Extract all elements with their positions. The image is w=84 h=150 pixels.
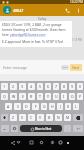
- button[interactable]: Contact avatar: [3, 6, 11, 14]
- staticText: 1:15 PM: [72, 38, 82, 42]
- button[interactable]: N: [55, 114, 62, 121]
- button[interactable]: More options: [73, 5, 84, 16]
- button[interactable]: Shift: [1, 114, 8, 121]
- staticText: 160/1: [62, 66, 68, 69]
- staticText: Send: [72, 66, 80, 70]
- staticText: J: [60, 104, 61, 109]
- button[interactable]: Move to Next: [20, 125, 62, 132]
- button[interactable]: Call: [62, 5, 73, 16]
- button[interactable]: 6: [45, 83, 51, 90]
- button[interactable]: Home: [38, 139, 45, 146]
- button[interactable]: V: [37, 114, 44, 121]
- button[interactable]: D: [23, 103, 30, 110]
- staticText: L: [75, 104, 77, 109]
- button[interactable]: G: [41, 103, 47, 110]
- button[interactable]: W: [10, 93, 17, 100]
- staticText: 5: [39, 84, 42, 89]
- staticText: 4: [30, 84, 33, 89]
- staticText: U: [55, 94, 58, 99]
- button[interactable]: X: [19, 114, 26, 121]
- button[interactable]: Keyboard: [28, 139, 35, 146]
- staticText: 2: [12, 84, 15, 89]
- button[interactable]: EDGE 3/Court 1395, 2 B&R, 2 car garage: [0, 21, 72, 47]
- button[interactable]: 160/1: [61, 65, 69, 70]
- button[interactable]: K: [65, 103, 71, 110]
- staticText: V: [39, 115, 42, 120]
- button[interactable]: Symbols: [1, 125, 9, 132]
- button[interactable]: Z: [10, 114, 17, 121]
- staticText: ↵: [77, 127, 80, 131]
- staticText: .: [67, 126, 68, 131]
- staticText: !#1: [3, 127, 7, 130]
- staticText: E-Z approval. Move in fast. To STOP UTed: [2, 40, 63, 44]
- button[interactable]: B: [46, 114, 53, 121]
- staticText: 9: [71, 84, 74, 89]
- button[interactable]: Recent apps: [64, 139, 71, 146]
- staticText: H: [51, 104, 54, 109]
- staticText: Today: [0, 17, 84, 21]
- button[interactable]: P: [77, 93, 83, 100]
- button[interactable]: M: [64, 114, 71, 121]
- staticText: P: [79, 94, 82, 99]
- staticText: R: [30, 94, 33, 99]
- staticText: C: [30, 115, 33, 120]
- button[interactable]: A: [5, 103, 12, 110]
- staticText: yaleedgeNChomes.com: [10, 33, 46, 37]
- button[interactable]: O: [69, 93, 75, 100]
- button[interactable]: T: [37, 93, 43, 100]
- button[interactable]: 8: [61, 83, 67, 90]
- button[interactable]: Q: [1, 93, 8, 100]
- button[interactable]: E: [19, 93, 26, 100]
- staticText: F: [35, 104, 37, 109]
- button[interactable]: R: [28, 93, 35, 100]
- staticText: B: [48, 115, 51, 120]
- staticText: G: [43, 104, 46, 109]
- button[interactable]: 7: [53, 83, 59, 90]
- staticText: Z: [12, 115, 15, 120]
- button[interactable]: Enter: [73, 125, 83, 132]
- staticText: EDGE 3/Court 1395, 2 B&R, 2 car garage: [2, 23, 62, 27]
- button[interactable]: Hide keyboard: [15, 139, 22, 146]
- button[interactable]: S: [14, 103, 21, 110]
- button[interactable]: U: [53, 93, 59, 100]
- staticText: O: [71, 94, 74, 99]
- staticText: 48847: [13, 8, 24, 13]
- staticText: Enter message: [3, 65, 27, 70]
- button[interactable]: Delete: [73, 114, 83, 121]
- staticText: homes Starting at $200/month. View them: [2, 28, 66, 32]
- button[interactable]: L: [73, 103, 79, 110]
- staticText: M: [66, 115, 70, 120]
- button[interactable]: J: [57, 103, 63, 110]
- staticText: W: [12, 94, 16, 99]
- button[interactable]: Y: [45, 93, 51, 100]
- button[interactable]: 4: [28, 83, 35, 90]
- button[interactable]: Voice input: [49, 139, 56, 146]
- button[interactable]: Send: [70, 64, 82, 71]
- staticText: E: [22, 94, 24, 99]
- button[interactable]: 9: [69, 83, 75, 90]
- staticText: Q: [3, 94, 6, 99]
- staticText: 12:22 PM: [70, 0, 83, 4]
- button[interactable]: H: [49, 103, 55, 110]
- staticText: K: [67, 104, 70, 109]
- button[interactable]: Back: [57, 139, 64, 146]
- staticText: 0: [79, 84, 82, 89]
- staticText: 7: [55, 84, 58, 89]
- staticText: 6: [47, 84, 50, 89]
- staticText: 1: [3, 84, 6, 89]
- staticText: here: [2, 33, 10, 37]
- button[interactable]: 0: [77, 83, 83, 90]
- button[interactable]: F: [32, 103, 39, 110]
- staticText: 8: [63, 84, 66, 89]
- staticText: X: [21, 115, 24, 120]
- staticText: A: [7, 104, 10, 109]
- button[interactable]: C: [28, 114, 35, 121]
- button[interactable]: Settings: [11, 125, 18, 132]
- button[interactable]: 2: [10, 83, 17, 90]
- button[interactable]: 1: [1, 83, 8, 90]
- button[interactable]: Share: [9, 139, 16, 146]
- button[interactable]: I: [61, 93, 67, 100]
- button[interactable]: 3: [19, 83, 26, 90]
- button[interactable]: 5: [37, 83, 43, 90]
